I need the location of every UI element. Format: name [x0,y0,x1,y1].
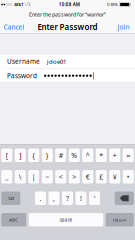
staticText: % [71,150,77,160]
staticText: . [39,193,41,203]
button[interactable]: _ [1,170,12,183]
staticText: ~ [45,172,49,181]
button[interactable]: < [55,170,66,183]
staticText: 85% [111,2,118,7]
staticText: ? [66,193,69,203]
staticText: 123 [8,195,14,201]
button[interactable]: Password [0,69,135,83]
button[interactable]: ABC [1,213,26,226]
button[interactable]: ’ [89,191,100,205]
staticText: + [113,150,117,160]
button[interactable]: Join [111,20,135,34]
button[interactable]: ¥ [109,170,120,183]
button[interactable]: > [69,170,80,183]
button[interactable]: { [28,148,39,162]
staticText: } [46,150,49,160]
staticText: * [99,150,103,160]
button[interactable]: Cancel [0,20,30,34]
staticText: ABC [9,217,18,223]
staticText: jdoe01 [47,57,66,65]
button[interactable]: ~ [42,170,53,183]
staticText: Cancel [3,22,24,32]
button[interactable]: ! [75,191,86,205]
button[interactable]: 123 [1,191,20,205]
staticText: € [86,172,90,181]
button[interactable]: + [109,148,120,162]
staticText: { [32,150,35,160]
staticText: LTE [25,2,31,7]
button[interactable]: * [96,148,107,162]
button[interactable]: = [123,148,134,162]
staticText: \ [19,172,22,181]
staticText: # [59,150,63,160]
button[interactable]: £ [96,170,107,183]
staticText: _ [5,172,8,181]
button[interactable]: € [82,170,93,183]
button[interactable]: Username [0,54,135,68]
staticText: | [32,172,36,181]
staticText: ] [19,150,21,160]
button[interactable]: Delete [115,191,134,205]
button[interactable]: return [106,213,134,226]
staticText: 10:08 AM [59,1,80,8]
staticText: Join [117,22,129,32]
staticText: Username [7,57,40,66]
button[interactable]: ? [62,191,73,205]
button[interactable]: ^ [82,148,93,162]
button[interactable]: ] [15,148,26,162]
staticText: Enter Password [37,22,97,32]
button[interactable]: . [35,191,46,205]
button[interactable]: # [55,148,66,162]
staticText: > [72,172,76,181]
button[interactable]: • [123,170,134,183]
button[interactable]: \ [15,170,26,183]
staticText: AT&T [14,2,23,7]
staticText: , [53,193,55,203]
staticText: ’ [94,193,95,203]
staticText: < [59,172,63,181]
button[interactable]: [ [1,148,12,162]
staticText: • [127,172,130,181]
staticText: return [113,217,127,223]
staticText: Password [7,71,37,80]
staticText: Enter the password for “warrior” [29,11,106,18]
staticText: ^ [86,150,90,160]
staticText: [ [6,150,8,160]
button[interactable]: | [28,170,39,183]
staticText: ¥ [113,172,117,181]
button[interactable]: , [48,191,59,205]
button[interactable]: } [42,148,53,162]
button[interactable]: % [69,148,80,162]
staticText: ! [80,193,82,203]
button[interactable]: space [29,213,103,226]
staticText: = [126,150,130,160]
staticText: £ [99,172,103,181]
staticText: space [59,217,72,223]
